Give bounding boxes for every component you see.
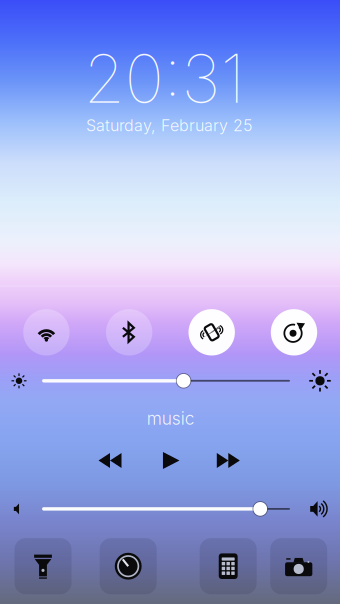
- staticText: Saturday, February 25: [86, 116, 252, 135]
- button[interactable]: Timer: [100, 538, 157, 594]
- staticText: music: [147, 408, 195, 429]
- button[interactable]: Play: [151, 447, 191, 473]
- button[interactable]: Calculator: [200, 538, 257, 594]
- button[interactable]: Camera: [270, 538, 327, 594]
- button[interactable]: Flashlight: [14, 538, 71, 594]
- button[interactable]: Wi-Fi: [23, 309, 70, 355]
- button[interactable]: Bluetooth: [106, 309, 152, 355]
- button[interactable]: Next track: [208, 447, 248, 473]
- button[interactable]: Rotation lock: [271, 309, 317, 355]
- button[interactable]: Silent mode: [188, 309, 235, 355]
- staticText: 20:31: [83, 38, 244, 119]
- button[interactable]: Previous track: [90, 447, 130, 473]
